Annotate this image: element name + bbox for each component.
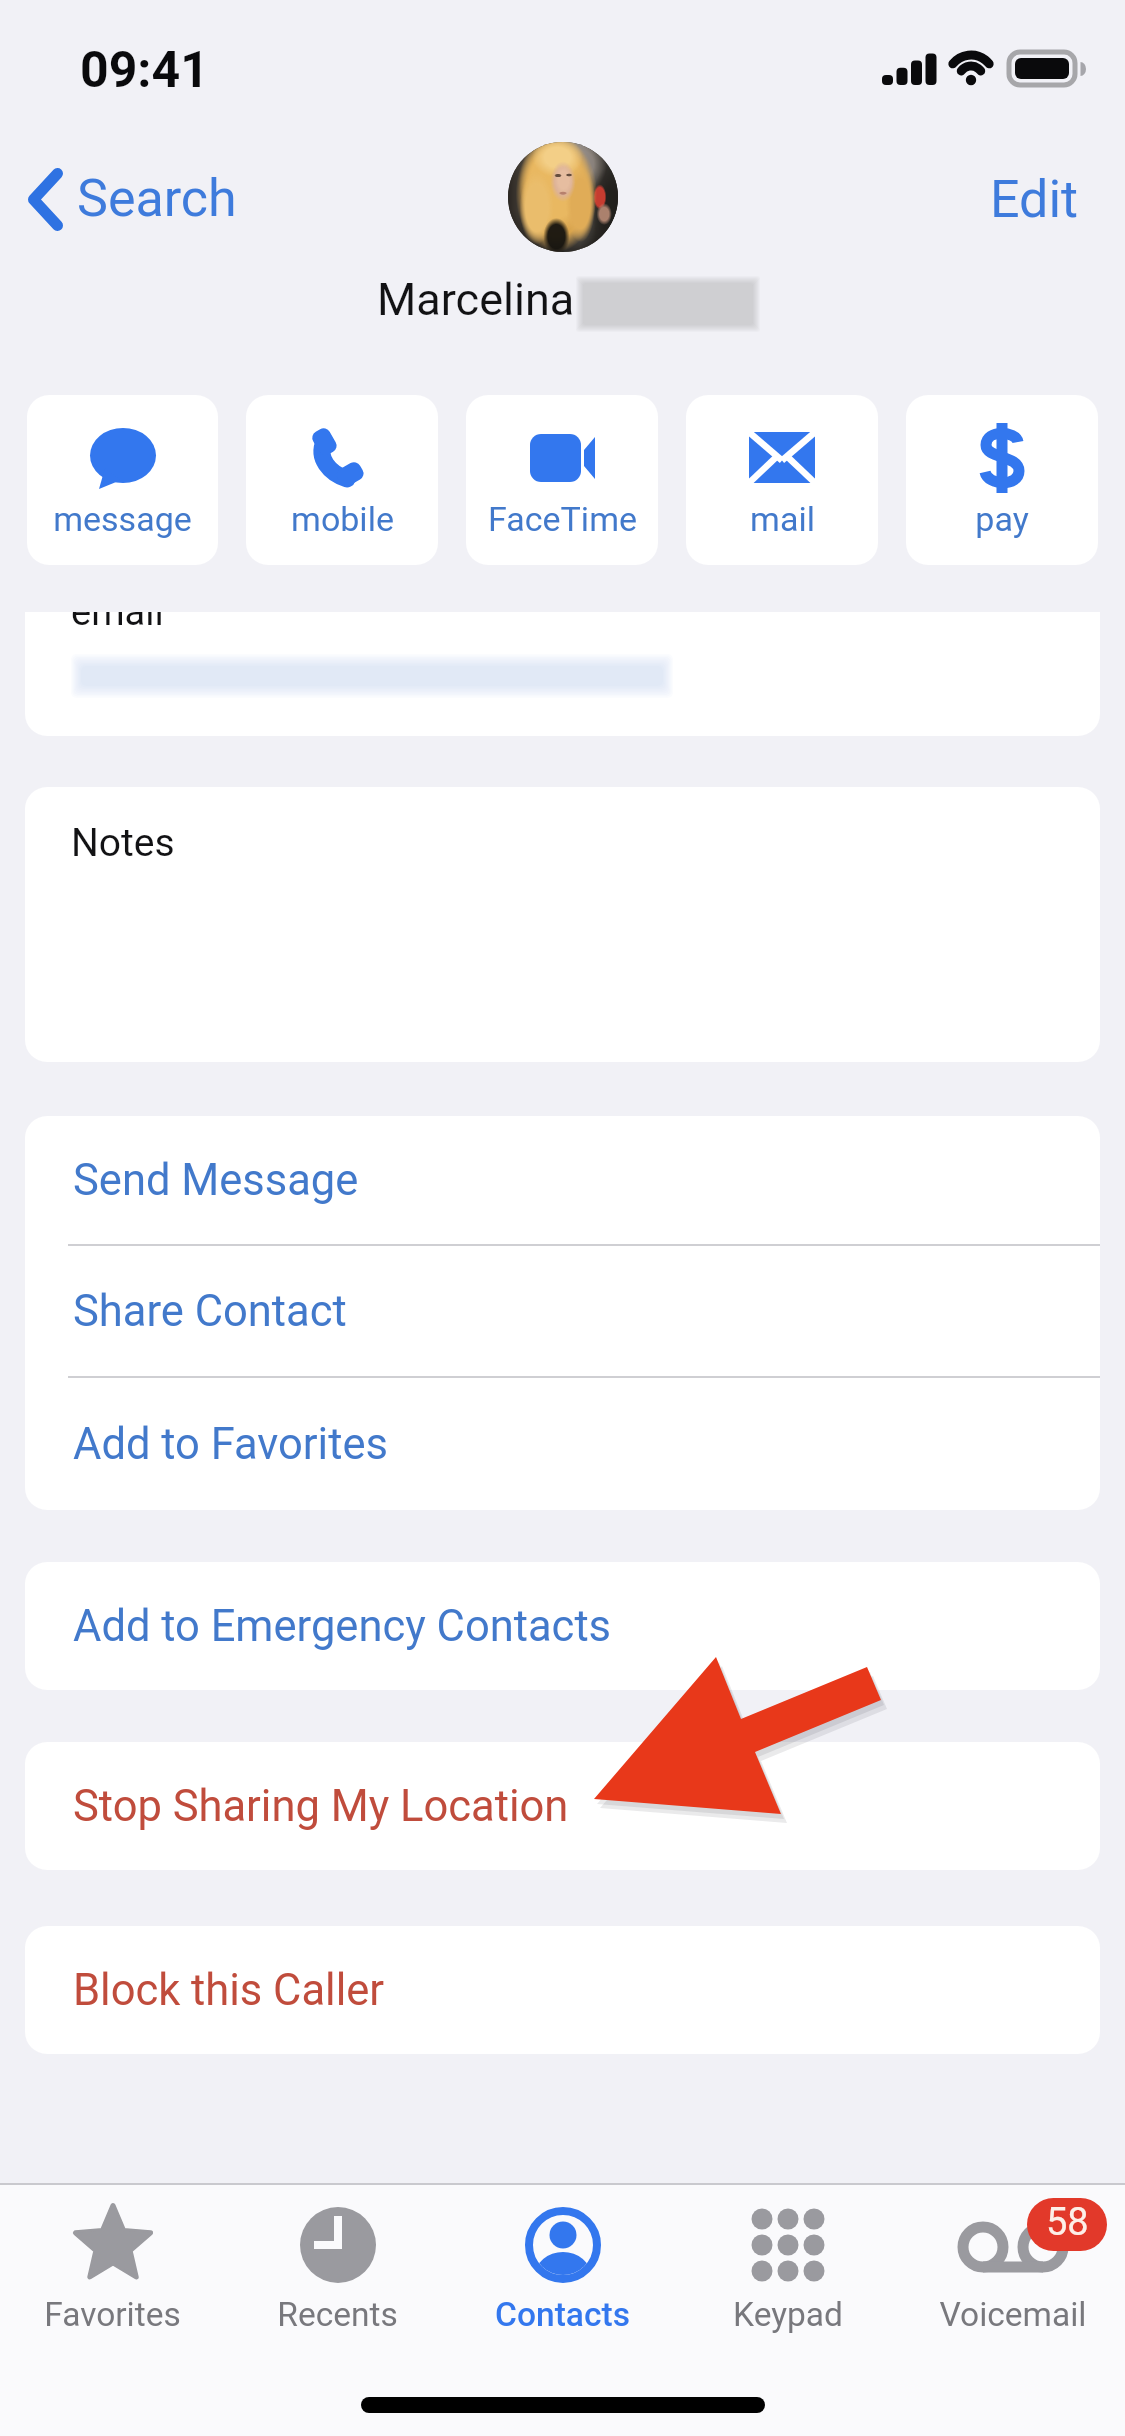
staticText: Stop Sharing My Location: [73, 1781, 569, 1832]
button[interactable]: Edit: [978, 161, 1091, 238]
staticText: Contacts: [495, 2295, 630, 2334]
staticText: pay: [975, 499, 1029, 539]
staticText: Voicemail: [939, 2295, 1087, 2334]
button[interactable]: Share Contact: [25, 1246, 1100, 1376]
staticText: Edit: [990, 169, 1079, 230]
staticText: Send Message: [73, 1155, 359, 1206]
button[interactable]: Block this Caller: [25, 1926, 1100, 2054]
button[interactable]: message: [27, 395, 218, 565]
button[interactable]: Add to Favorites: [25, 1378, 1100, 1510]
button[interactable]: Stop Sharing My Location: [25, 1742, 1100, 1870]
button[interactable]: mail: [686, 395, 878, 565]
button[interactable]: Send Message: [25, 1116, 1100, 1244]
staticText: Block this Caller: [73, 1965, 385, 2016]
other: Back: [28, 168, 63, 231]
button[interactable]: mobile: [246, 395, 438, 565]
staticText: Add to Emergency Contacts: [73, 1601, 612, 1652]
button[interactable]: Notes: [25, 787, 1100, 1062]
button[interactable]: FaceTime: [466, 395, 658, 565]
button[interactable]: email: [25, 612, 1100, 736]
button[interactable]: Favorites: [0, 2185, 225, 2361]
staticText: 58: [1046, 2200, 1089, 2245]
button[interactable]: Keypad: [675, 2185, 900, 2361]
button[interactable]: pay: [906, 395, 1098, 565]
staticText: Notes: [71, 820, 175, 866]
other: Annotation arrow: [0, 0, 1125, 2436]
staticText: Keypad: [733, 2295, 843, 2334]
staticText: Add to Favorites: [73, 1419, 388, 1470]
button[interactable]: Contacts: [450, 2185, 675, 2361]
staticText: Recents: [277, 2295, 398, 2334]
staticText: mail: [750, 499, 815, 539]
staticText: 09:41: [80, 41, 209, 100]
button[interactable]: Back: [18, 162, 245, 237]
staticText: Favorites: [44, 2295, 181, 2334]
button[interactable]: Add to Emergency Contacts: [25, 1562, 1100, 1690]
staticText: Search: [77, 168, 237, 229]
staticText: message: [53, 499, 192, 539]
staticText: mobile: [291, 499, 394, 539]
staticText: FaceTime: [488, 499, 637, 539]
button[interactable]: Recents: [225, 2185, 450, 2361]
staticText: Marcelina: [377, 273, 575, 326]
button[interactable]: Voicemail: [900, 2185, 1125, 2361]
staticText: Share Contact: [73, 1286, 347, 1337]
staticText: email: [71, 612, 164, 635]
